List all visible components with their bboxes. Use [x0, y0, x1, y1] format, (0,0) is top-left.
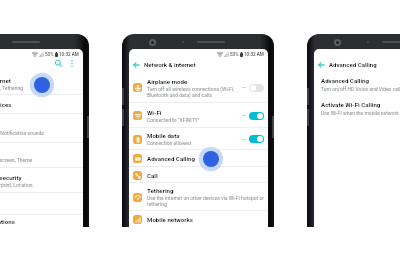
- staticText: Wi-Fi: [147, 109, 162, 116]
- button[interactable]: Back: [129, 57, 268, 71]
- staticText: Screen lock, Fingerprint, Location: [0, 182, 33, 188]
- button[interactable]: Sounds: [0, 114, 83, 143]
- staticText: 10:32 AM: [59, 52, 79, 57]
- button[interactable]: Switch on: [249, 112, 264, 120]
- staticText: Use Wi-Fi when the mobile network isn't …: [321, 110, 400, 116]
- staticText: Turn on/off HD Voice and Video calling: [321, 86, 400, 92]
- other: Back: [132, 61, 139, 68]
- staticText: Mobile networks: [147, 216, 193, 223]
- button[interactable]: Advanced Calling: [129, 150, 268, 167]
- staticText: Mobile data: [147, 132, 180, 139]
- staticText: Use the Internet on other devices via Wi…: [147, 195, 264, 207]
- staticText: Apps & notifications: [0, 218, 15, 225]
- staticText: Advanced Calling: [329, 61, 377, 68]
- button[interactable]: Lock screen & security: [0, 168, 83, 193]
- staticText: Connected devices: [0, 101, 12, 108]
- button[interactable]: Switch on: [249, 135, 264, 143]
- button[interactable]: Call: [129, 167, 268, 183]
- staticText: 53%: [45, 52, 54, 57]
- button[interactable]: Network & internet: [0, 73, 83, 95]
- button[interactable]: Connected devices: [0, 94, 83, 114]
- button[interactable]: More options: [66, 57, 78, 69]
- staticText: Advanced Calling: [321, 77, 370, 84]
- staticText: 53%: [230, 52, 239, 57]
- staticText: Advanced Calling: [147, 155, 196, 162]
- button[interactable]: Switch off: [249, 84, 264, 92]
- button[interactable]: Mobile data: [129, 128, 268, 150]
- button[interactable]: Display: [0, 143, 83, 168]
- staticText: Turn off all wireless connections (Wi-Fi…: [147, 86, 235, 98]
- staticText: Connection allowed: [147, 140, 191, 146]
- button[interactable]: Apps & notifications: [0, 215, 83, 227]
- staticText: 10:32 AM: [244, 52, 264, 57]
- button[interactable]: Airplane mode: [129, 72, 268, 103]
- button[interactable]: Search: [52, 57, 64, 69]
- staticText: Lock screen & security: [0, 174, 22, 181]
- staticText: Network & internet: [0, 77, 11, 84]
- staticText: Call: [147, 172, 158, 179]
- staticText: Activate Wi-Fi Calling: [321, 101, 381, 108]
- staticText: Wi-Fi, Mobile, Data, Tethering: [0, 85, 23, 91]
- button[interactable]: Advanced Calling: [314, 77, 400, 93]
- button[interactable]: Mobile networks: [129, 211, 268, 227]
- button[interactable]: Activate Wi-Fi Calling: [314, 101, 400, 117]
- button[interactable]: Tethering: [129, 183, 268, 211]
- staticText: Network & internet: [144, 61, 196, 68]
- staticText: Airplane mode: [147, 78, 188, 85]
- staticText: Volume, Vibration, Notification sounds: [0, 130, 44, 136]
- button[interactable]: Accounts: [0, 193, 83, 215]
- staticText: Brightness, Home screen, Theme: [0, 157, 33, 163]
- other: Back: [317, 61, 324, 68]
- button[interactable]: Wi-Fi: [129, 103, 268, 128]
- staticText: Connected to "XFINITY": [147, 117, 200, 123]
- staticText: Tethering: [147, 187, 174, 194]
- button[interactable]: Back: [314, 57, 400, 71]
